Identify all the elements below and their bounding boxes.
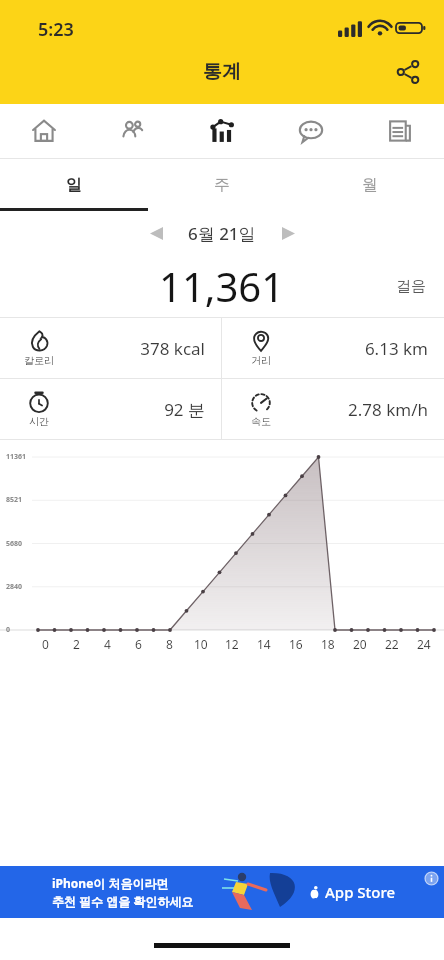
staticText: 92 분 [62,398,205,421]
staticText: 11,361 [159,259,285,313]
staticText: 월 [362,175,378,195]
button[interactable]: 주 [148,159,296,211]
staticText: 22 [385,636,399,652]
staticText: 주 [214,175,230,195]
staticText: 속도 [251,415,271,428]
staticText: 16 [289,636,303,652]
button[interactable]: Previous day [138,215,174,251]
button[interactable]: 월 [296,159,444,211]
button[interactable]: 속도 [222,379,444,439]
button[interactable]: Home [0,104,88,158]
staticText: 5680 [6,539,23,549]
button[interactable]: Ad info [423,870,439,886]
staticText: 6월 21일 [188,222,256,245]
staticText: 통계 [203,60,241,84]
staticText: 2.78 km/h [284,398,428,421]
staticText: 4 [104,636,111,652]
staticText: 일 [66,175,82,195]
staticText: 8521 [6,495,23,505]
staticText: 시간 [29,415,49,428]
staticText: 11361 [6,452,27,462]
button[interactable]: 칼로리 [0,318,221,378]
staticText: 378 kcal [62,337,205,360]
staticText: 14 [257,636,271,652]
staticText: 칼로리 [24,354,54,367]
staticText: 18 [321,636,335,652]
staticText: App Store [325,882,396,902]
button[interactable]: 일 [0,159,148,211]
staticText: 20 [353,636,367,652]
staticText: 추천 필수 앱을 확인하세요 [52,893,194,909]
button[interactable]: Statistics [177,104,266,158]
button[interactable]: Friends [88,104,177,158]
staticText: 0 [6,625,11,635]
staticText: 2840 [6,582,23,592]
staticText: 5:23 [38,17,74,42]
button[interactable]: Share [384,48,432,96]
staticText: 걸음 [396,277,426,296]
staticText: 2 [73,636,80,652]
button[interactable]: Next day [270,215,306,251]
staticText: 0 [42,636,49,652]
staticText: 24 [417,636,431,652]
button[interactable]: 시간 [0,379,221,439]
staticText: iPhone이 처음이라면 [52,875,169,891]
button[interactable]: iPhone이 처음이라면 [0,866,444,918]
staticText: 8 [166,636,173,652]
staticText: 거리 [251,354,271,367]
button[interactable]: News [355,104,444,158]
staticText: 12 [225,636,239,652]
button[interactable]: 거리 [222,318,444,378]
staticText: 6.13 km [284,337,428,360]
staticText: 10 [194,636,208,652]
staticText: 6 [135,636,142,652]
button[interactable]: Chat [266,104,355,158]
